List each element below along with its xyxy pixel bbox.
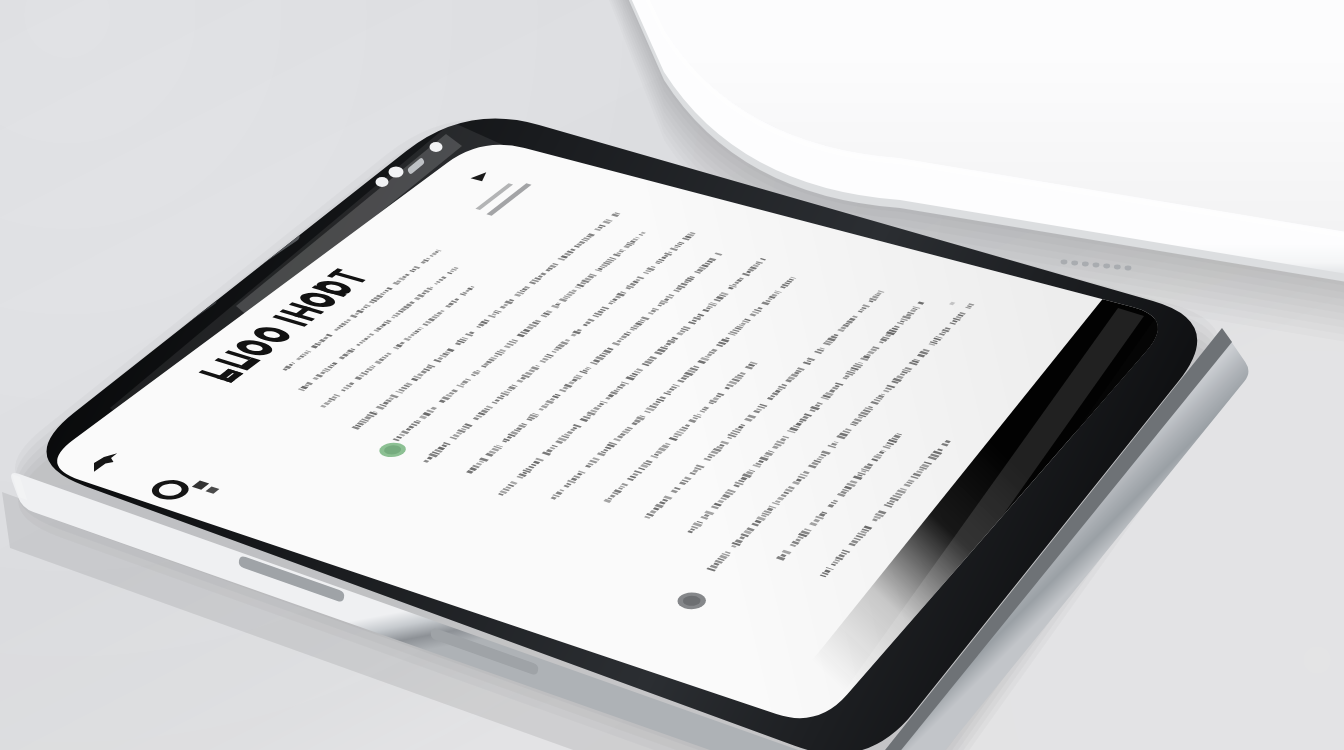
other: Smartphone displaying an article, restin… [0,0,1344,750]
